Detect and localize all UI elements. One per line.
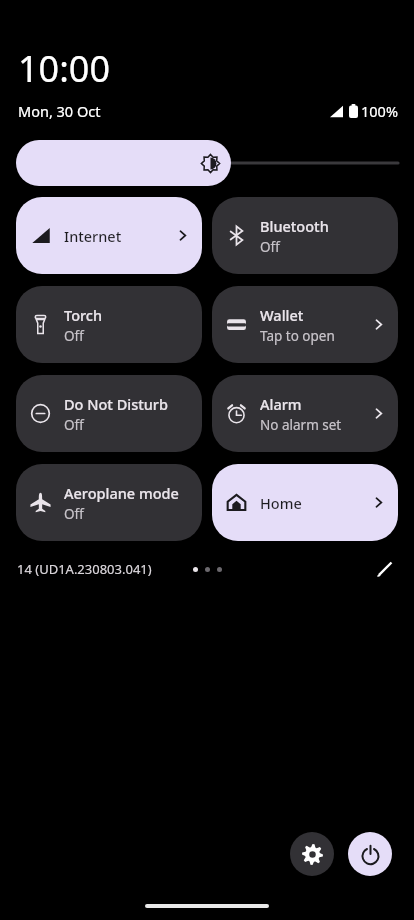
button[interactable]: Torch [16,286,202,363]
staticText: Bluetooth [260,216,329,236]
staticText: Internet [64,226,122,246]
staticText: Off [64,327,84,345]
staticText: Aeroplane mode [64,483,179,503]
button[interactable]: Internet [16,197,202,274]
button[interactable]: Alarm [212,375,398,452]
staticText: Torch [64,305,103,325]
staticText: Wallet [260,305,304,325]
button[interactable]: Bluetooth [212,197,398,274]
button[interactable]: Aeroplane mode [16,464,202,541]
button[interactable]: Do Not Disturb [16,375,202,452]
button[interactable]: Power [348,832,392,876]
staticText: 10:00 [18,44,111,93]
button[interactable]: Home [212,464,398,541]
staticText: Off [260,238,280,256]
button[interactable]: Brightness [16,140,398,186]
staticText: Mon, 30 Oct [18,101,101,121]
staticText: Off [64,416,84,434]
button[interactable]: Settings [290,832,334,876]
staticText: 100% [361,101,398,121]
staticText: Off [64,505,84,523]
staticText: Alarm [260,394,302,414]
button[interactable]: Edit tiles [368,552,402,586]
staticText: Home [260,493,302,513]
staticText: Tap to open [260,327,335,345]
button[interactable]: Wallet [212,286,398,363]
staticText: Do Not Disturb [64,394,168,414]
staticText: 14 (UD1A.230803.041) [17,560,152,578]
staticText: No alarm set [260,416,342,434]
